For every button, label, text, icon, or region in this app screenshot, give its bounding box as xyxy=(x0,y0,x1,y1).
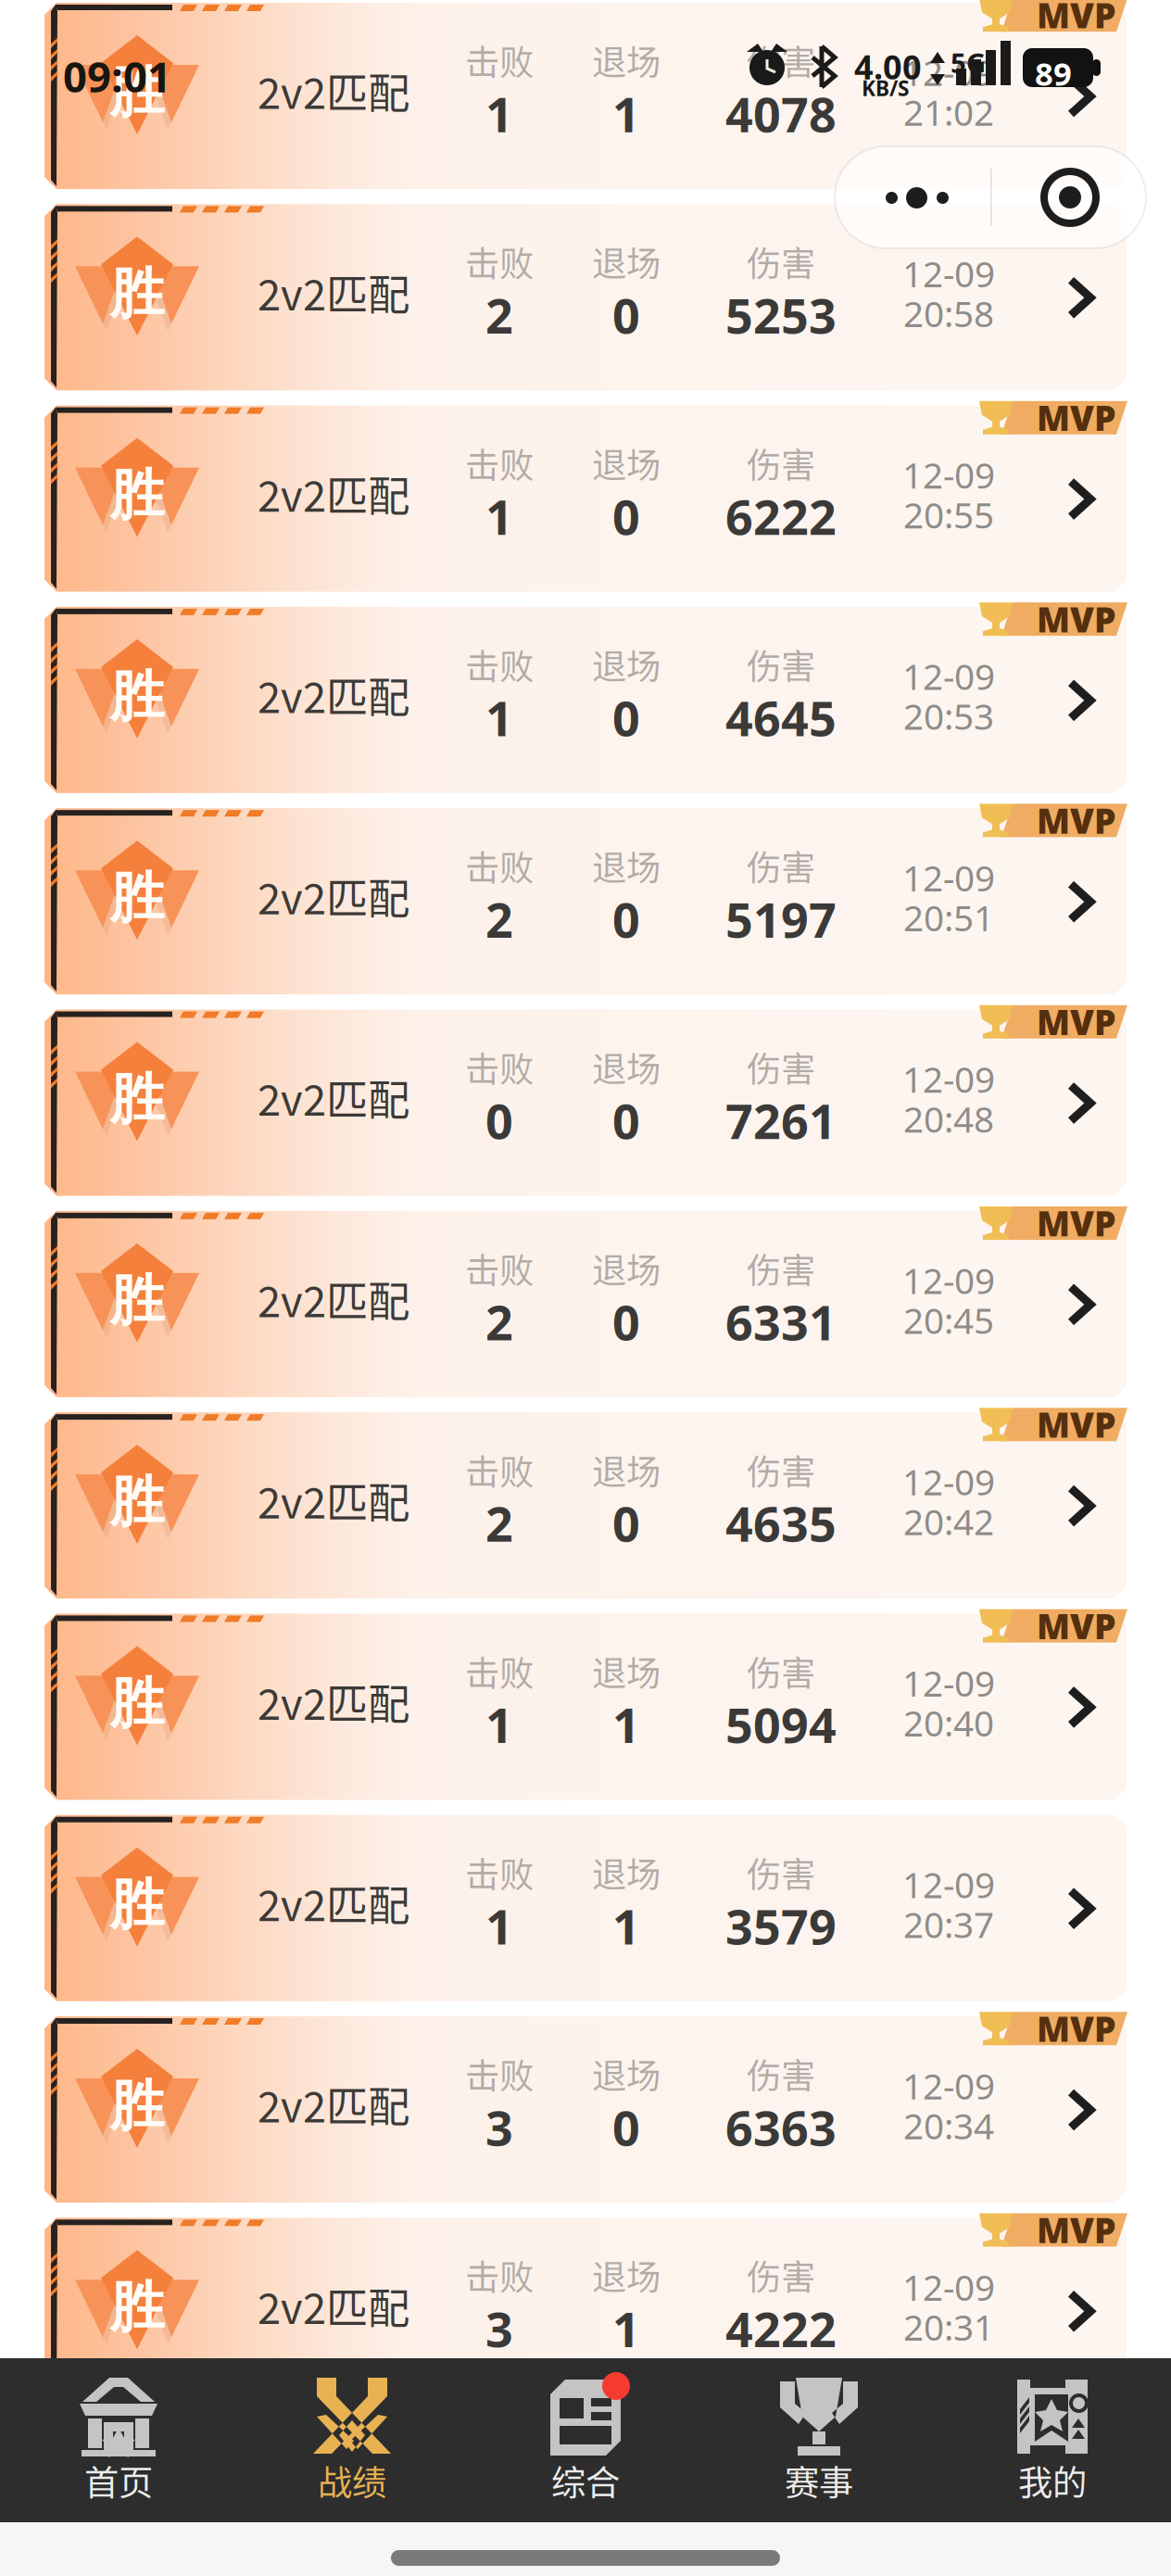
staticText: 退场 xyxy=(592,1847,661,1898)
staticText: 伤害 xyxy=(747,2049,815,2099)
staticText: 击败 xyxy=(465,639,534,689)
staticText: 击败 xyxy=(465,1042,534,1092)
button[interactable]: 胜 xyxy=(44,808,1127,994)
staticText: 胜 xyxy=(110,1871,164,1939)
staticText: 0 xyxy=(612,484,640,548)
staticText: 胜 xyxy=(110,1468,164,1536)
button[interactable]: 赛事 xyxy=(702,2358,936,2522)
staticText: 1 xyxy=(612,82,640,146)
staticText: MVP xyxy=(1037,0,1116,38)
staticText: 1 xyxy=(485,1894,513,1958)
staticText: 1 xyxy=(612,2296,640,2360)
button[interactable]: 胜 xyxy=(44,607,1127,793)
staticText: 胜 xyxy=(110,1065,164,1134)
staticText: 20:51 xyxy=(903,893,994,941)
staticText: 退场 xyxy=(592,639,661,689)
staticText: 0 xyxy=(612,686,640,750)
staticText: 击败 xyxy=(465,1847,534,1898)
staticText: 6222 xyxy=(725,484,837,548)
staticText: 退场 xyxy=(592,2250,661,2300)
staticText: 2v2匹配 xyxy=(258,262,409,322)
staticText: 2v2匹配 xyxy=(258,2275,409,2336)
staticText: 1 xyxy=(485,484,513,548)
staticText: 我的 xyxy=(1018,2456,1087,2506)
button[interactable]: 综合 xyxy=(469,2358,702,2522)
staticText: 09:01 xyxy=(63,48,171,104)
staticText: 12-09 xyxy=(902,1860,995,1908)
staticText: 20:37 xyxy=(903,1900,994,1948)
staticText: 伤害 xyxy=(747,1646,815,1696)
staticText: 20:34 xyxy=(903,2102,994,2149)
button[interactable]: 胜 xyxy=(44,2016,1127,2203)
staticText: 0 xyxy=(612,887,640,951)
staticText: 退场 xyxy=(592,841,661,891)
button[interactable]: More xyxy=(835,146,990,248)
staticText: 胜 xyxy=(110,1267,164,1335)
staticText: MVP xyxy=(1037,999,1116,1045)
button[interactable]: 战绩 xyxy=(235,2358,469,2522)
staticText: 伤害 xyxy=(747,1445,815,1495)
staticText: 首页 xyxy=(84,2456,153,2506)
staticText: 伤害 xyxy=(747,438,815,488)
staticText: 击败 xyxy=(465,2250,534,2300)
staticText: 赛事 xyxy=(785,2456,853,2506)
button[interactable]: 胜 xyxy=(44,3,1127,189)
staticText: 0 xyxy=(612,2095,640,2159)
staticText: 6363 xyxy=(725,2095,837,2159)
staticText: 2 xyxy=(485,1290,513,1354)
button[interactable]: 胜 xyxy=(44,2218,1127,2404)
staticText: MVP xyxy=(1037,1401,1116,1447)
staticText: 退场 xyxy=(592,1243,661,1293)
button[interactable]: 胜 xyxy=(44,1614,1127,1800)
staticText: 12-09 xyxy=(902,1055,995,1102)
staticText: 2 xyxy=(485,283,513,347)
staticText: 4222 xyxy=(725,2296,837,2360)
button[interactable]: 胜 xyxy=(44,1412,1127,1599)
staticText: 击败 xyxy=(465,2049,534,2099)
button[interactable]: 胜 xyxy=(44,1815,1127,2001)
staticText: 0 xyxy=(612,1088,640,1152)
staticText: 击败 xyxy=(465,841,534,891)
staticText: 伤害 xyxy=(747,639,815,689)
staticText: 2v2匹配 xyxy=(258,1268,409,1329)
staticText: 击败 xyxy=(465,1646,534,1696)
staticText: 20:53 xyxy=(903,692,994,740)
button[interactable]: 首页 xyxy=(2,2358,235,2522)
staticText: MVP xyxy=(1037,1200,1116,1246)
button[interactable]: 胜 xyxy=(44,204,1127,390)
staticText: MVP xyxy=(1037,797,1116,843)
staticText: 3579 xyxy=(725,1894,837,1958)
staticText: 20:42 xyxy=(903,1498,994,1545)
button[interactable]: 胜 xyxy=(44,1010,1127,1196)
staticText: MVP xyxy=(1037,395,1116,441)
staticText: 伤害 xyxy=(747,1243,815,1293)
button[interactable]: 我的 xyxy=(936,2358,1169,2522)
staticText: 胜 xyxy=(110,260,164,328)
staticText: 12-09 xyxy=(902,48,995,96)
button[interactable]: Close xyxy=(990,146,1146,248)
staticText: 伤害 xyxy=(747,35,815,85)
button[interactable]: 胜 xyxy=(44,1211,1127,1397)
staticText: 20:48 xyxy=(903,1095,994,1142)
staticText: 退场 xyxy=(592,438,661,488)
staticText: 20:55 xyxy=(903,491,994,538)
staticText: 1 xyxy=(612,1894,640,1958)
staticText: 12-09 xyxy=(902,2062,995,2109)
staticText: 胜 xyxy=(110,2273,164,2342)
staticText: 89 xyxy=(1035,52,1072,95)
staticText: 4645 xyxy=(725,686,837,750)
staticText: 1 xyxy=(612,1692,640,1756)
staticText: 击败 xyxy=(465,237,534,287)
staticText: 胜 xyxy=(110,58,164,127)
staticText: 2v2匹配 xyxy=(258,664,409,725)
staticText: 伤害 xyxy=(747,1847,815,1898)
button[interactable]: 胜 xyxy=(44,405,1127,592)
staticText: 12-09 xyxy=(902,1458,995,1505)
staticText: 4.00 xyxy=(854,44,922,89)
staticText: 12-09 xyxy=(902,451,995,498)
staticText: 6331 xyxy=(725,1290,837,1354)
staticText: 1 xyxy=(485,1692,513,1756)
staticText: 胜 xyxy=(110,864,164,932)
staticText: 1 xyxy=(485,82,513,146)
staticText: 击败 xyxy=(465,35,534,85)
